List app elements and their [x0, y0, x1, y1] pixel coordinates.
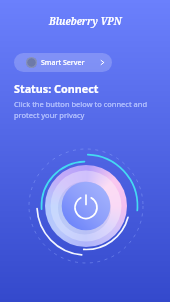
- staticText: Blueberry VPN: [49, 14, 122, 28]
- button[interactable]: Smart Server: [14, 53, 112, 72]
- button[interactable]: Connect: [0, 0, 170, 302]
- staticText: Click the button below to connect and pr…: [14, 99, 148, 120]
- staticText: Smart Server: [41, 58, 85, 68]
- staticText: Status: Connect: [14, 81, 99, 96]
